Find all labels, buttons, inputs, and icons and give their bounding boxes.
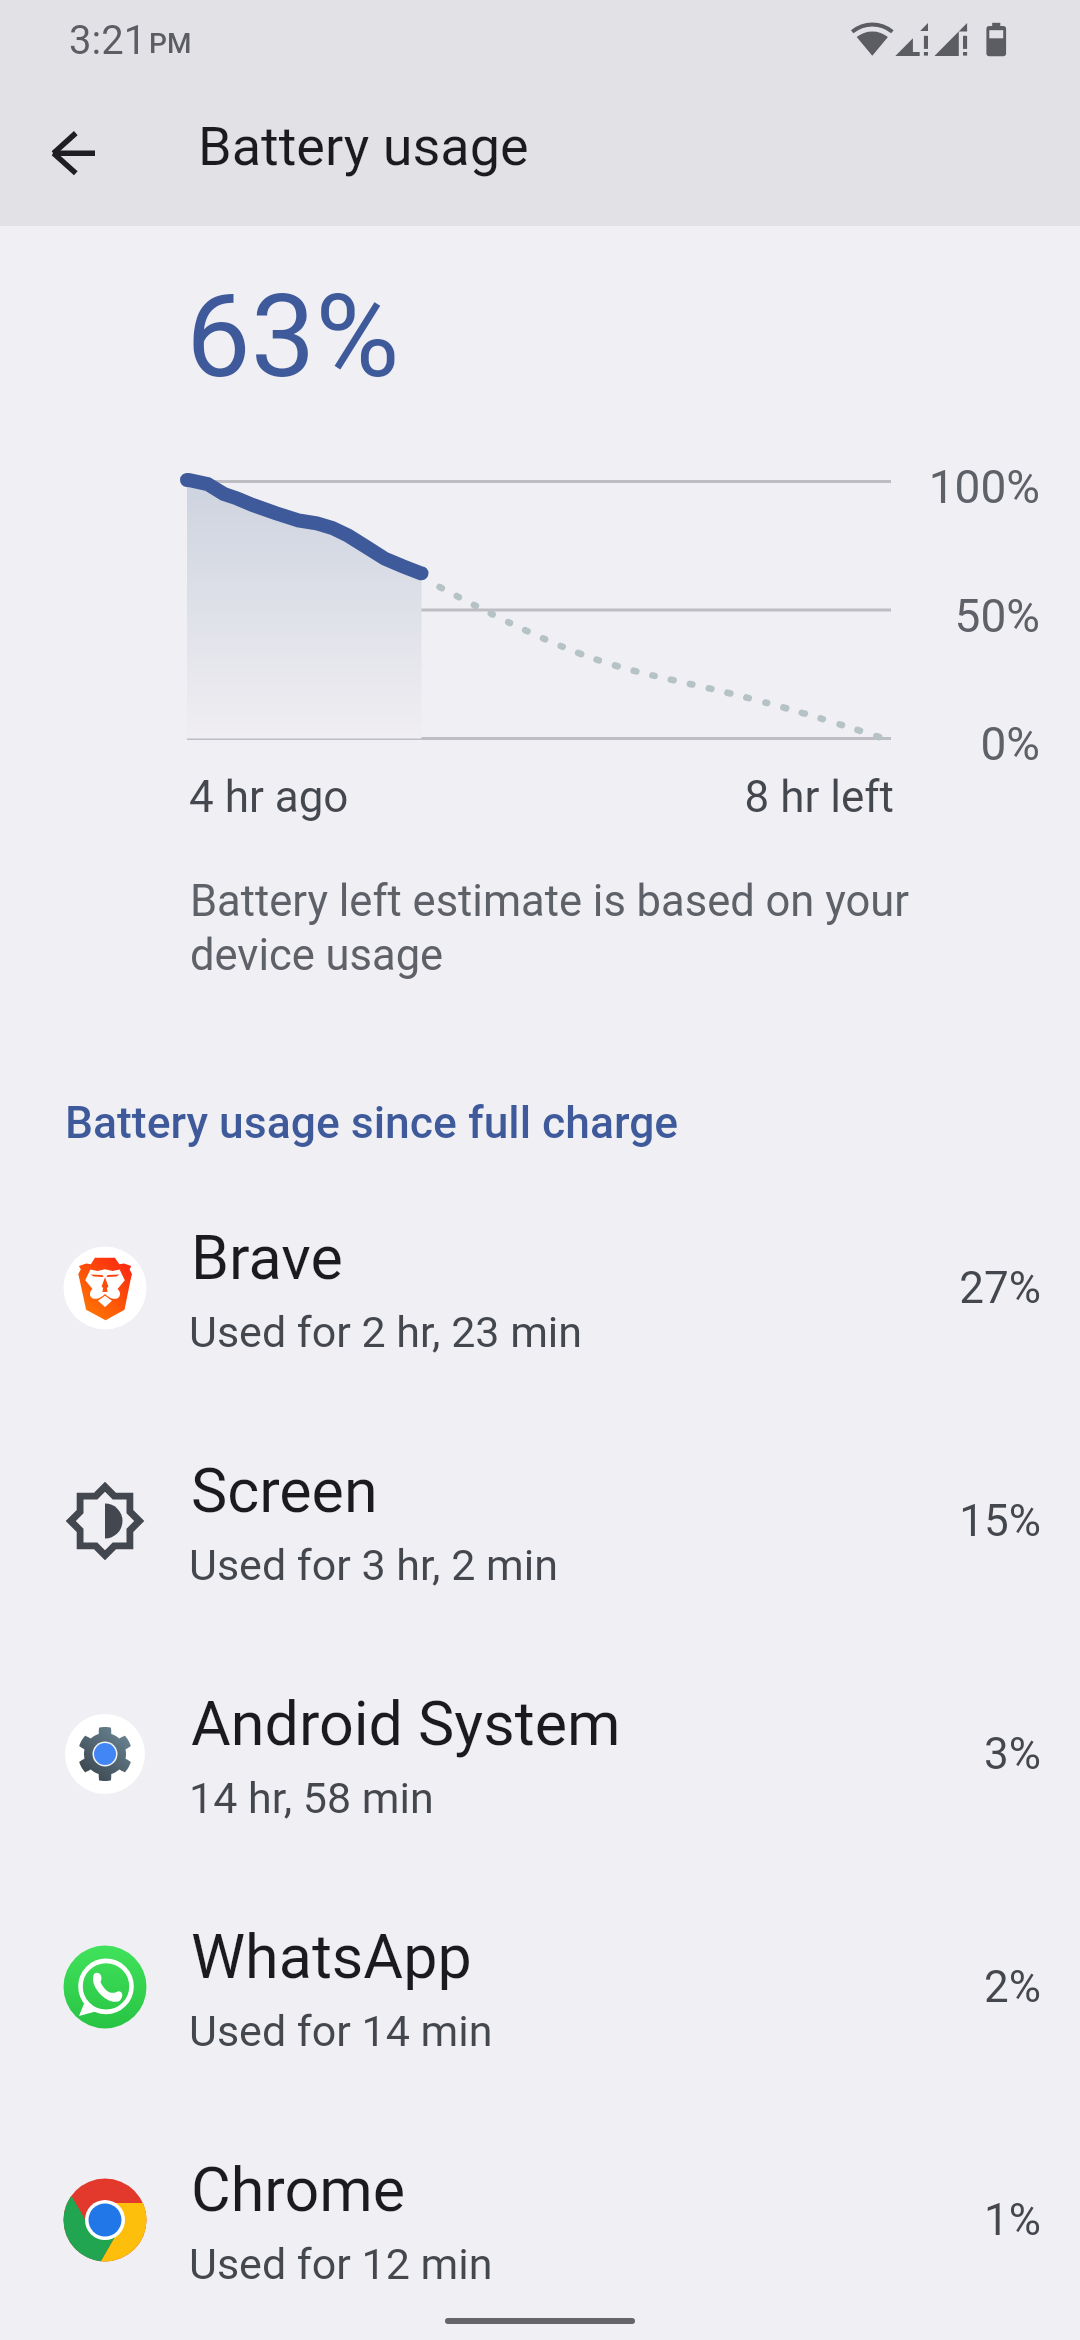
staticText: Used for 3 hr, 2 min — [189, 1540, 558, 1590]
staticText: 8 hr left — [494, 771, 894, 823]
button[interactable]: Brave — [0, 1171, 1080, 1404]
staticText: Used for 2 hr, 23 min — [189, 1307, 583, 1357]
staticText: 1% — [641, 2194, 1041, 2246]
staticText: Battery left estimate is based on your d… — [190, 876, 930, 981]
staticText: 15% — [641, 1495, 1041, 1547]
staticText: Brave — [191, 1222, 343, 1293]
staticText: Screen — [191, 1455, 378, 1526]
staticText: Used for 12 min — [189, 2239, 493, 2289]
staticText: Battery usage — [198, 115, 529, 178]
staticText: Android System — [191, 1688, 621, 1759]
button[interactable]: Android System — [0, 1637, 1080, 1870]
staticText: Chrome — [191, 2154, 406, 2225]
staticText: 3:21 — [69, 17, 147, 64]
staticText: WhatsApp — [191, 1921, 472, 1992]
staticText: 63% — [186, 269, 400, 404]
staticText: 2% — [641, 1961, 1041, 2013]
staticText: 0% — [640, 717, 1040, 771]
button[interactable]: Screen — [0, 1404, 1080, 1637]
button[interactable]: WhatsApp — [0, 1870, 1080, 2103]
staticText: 100% — [640, 460, 1040, 514]
staticText: 14 hr, 58 min — [189, 1773, 434, 1823]
staticText: Battery usage since full charge — [65, 1097, 679, 1149]
staticText: PM — [149, 27, 192, 60]
staticText: 4 hr ago — [189, 771, 349, 823]
staticText: 3% — [641, 1728, 1041, 1780]
staticText: 50% — [640, 589, 1040, 643]
staticText: 27% — [641, 1262, 1041, 1314]
button[interactable]: Navigate up — [26, 105, 122, 201]
staticText: Used for 14 min — [189, 2006, 493, 2056]
button[interactable]: Chrome — [0, 2103, 1080, 2336]
